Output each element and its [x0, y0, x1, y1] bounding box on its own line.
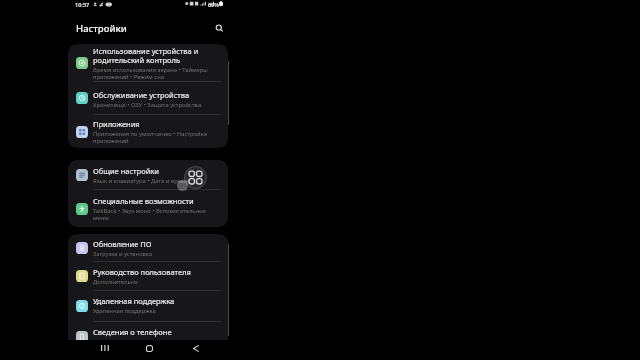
button[interactable]: Home: [139, 338, 159, 358]
staticText: Настройки: [76, 22, 127, 35]
staticText: Руководство пользователя: [93, 267, 191, 277]
button[interactable]: Удаленная поддержка: [68, 291, 228, 321]
staticText: Обновление ПО: [93, 239, 152, 249]
staticText: Удаленная поддержка: [93, 307, 156, 315]
staticText: Время использования экрана • Таймеры при…: [93, 66, 216, 81]
button[interactable]: Обновление ПО: [68, 234, 228, 261]
staticText: TalkBack • Звук моно • Вспомогательное м…: [93, 207, 216, 222]
button[interactable]: Использование устройства и родительский …: [68, 44, 228, 81]
staticText: Загрузка и установка: [93, 250, 153, 258]
staticText: Дополнительно: [93, 278, 138, 286]
staticText: Хранилище • ОЗУ • Защита устройства: [93, 101, 202, 109]
staticText: 10:57: [75, 1, 90, 9]
button[interactable]: Общие настройки: [68, 160, 228, 189]
button[interactable]: Обслуживание устройства: [68, 82, 228, 114]
staticText: Специальные возможности: [93, 196, 194, 206]
button[interactable]: Back: [186, 338, 206, 358]
staticText: Использование устройства и родительский …: [93, 46, 216, 65]
staticText: Приложения по умолчанию • Настройки прил…: [93, 130, 216, 145]
staticText: Язык и клавиатура • Дата и время: [93, 177, 189, 185]
button[interactable]: Специальные возможности: [68, 190, 228, 227]
staticText: Общие настройки: [93, 166, 159, 176]
staticText: Обслуживание устройства: [93, 90, 190, 100]
button[interactable]: Приложения: [68, 115, 228, 148]
button[interactable]: Сведения о телефоне: [68, 322, 228, 352]
staticText: Приложения: [93, 119, 140, 129]
staticText: Удаленная поддержка: [93, 296, 175, 306]
button[interactable]: Assistant menu: [184, 166, 207, 189]
staticText: 69%: [208, 1, 219, 8]
button[interactable]: Руководство пользователя: [68, 262, 228, 290]
button[interactable]: Recents: [95, 338, 115, 358]
staticText: Сведения о телефоне: [93, 327, 172, 337]
button[interactable]: Search: [213, 22, 225, 34]
